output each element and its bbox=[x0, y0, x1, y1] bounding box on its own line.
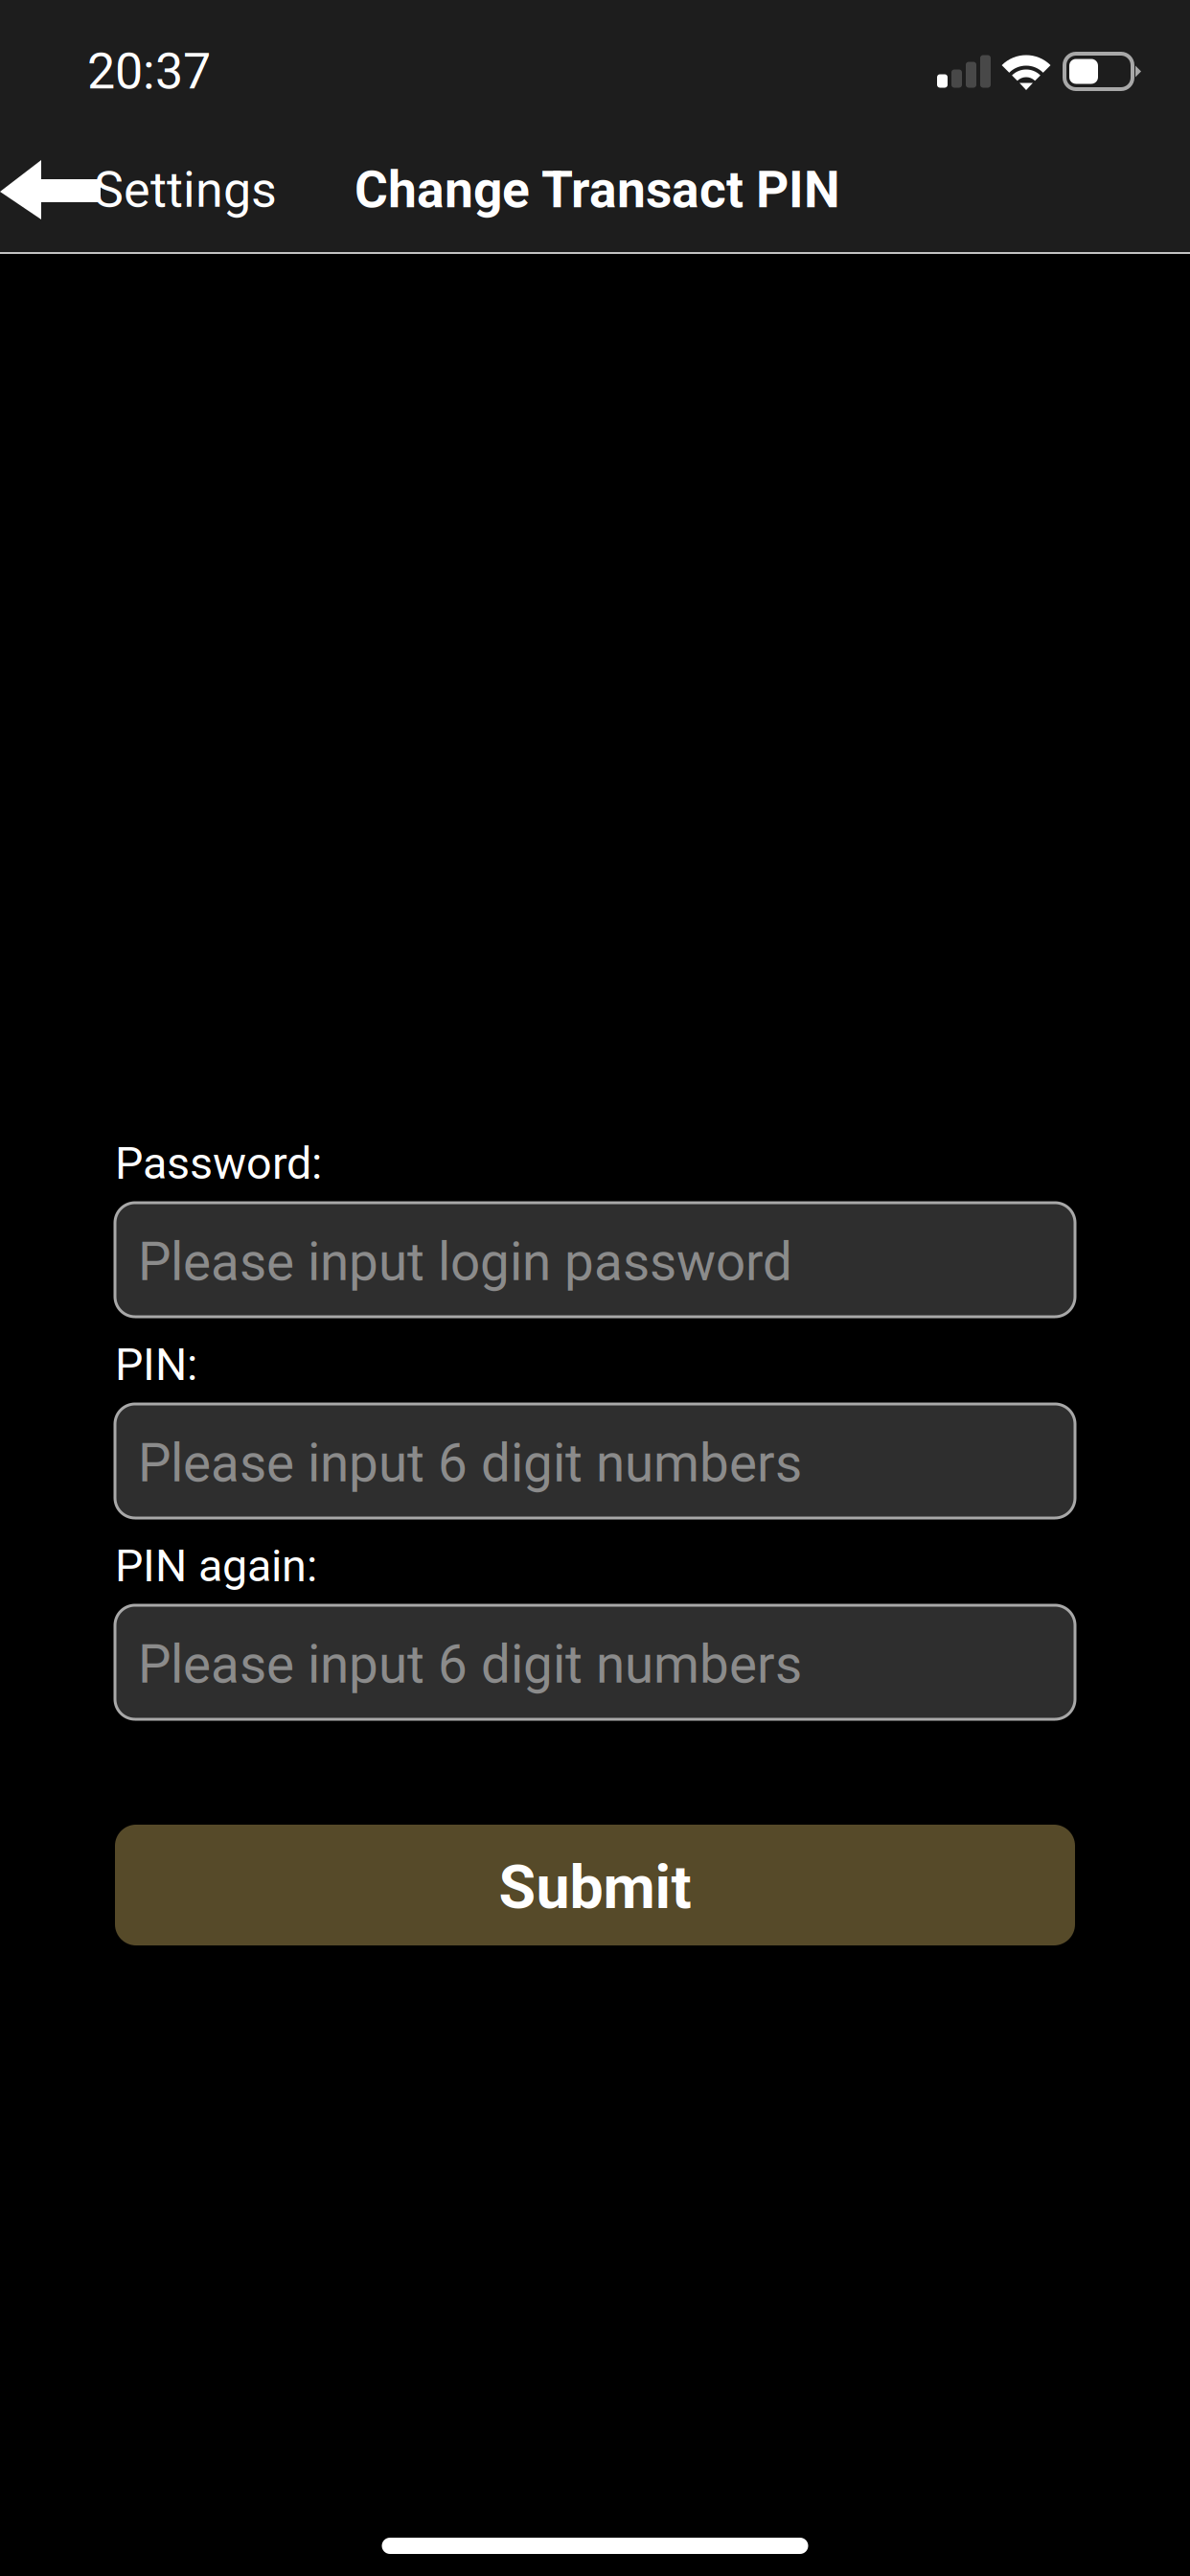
button[interactable]: Please input login password bbox=[115, 1203, 1075, 1317]
button[interactable]: Please input 6 digit numbers bbox=[115, 1605, 1075, 1719]
staticText: Please input 6 digit numbers bbox=[138, 1433, 802, 1494]
staticText: Password: bbox=[115, 1137, 322, 1190]
button[interactable]: Please input 6 digit numbers bbox=[115, 1404, 1075, 1518]
staticText: Settings bbox=[94, 161, 277, 219]
staticText: Please input login password bbox=[138, 1231, 792, 1293]
staticText: PIN again: bbox=[115, 1540, 317, 1592]
staticText: Please input 6 digit numbers bbox=[138, 1634, 802, 1695]
staticText: 20:37 bbox=[87, 42, 211, 101]
button[interactable]: Submit bbox=[115, 1825, 1075, 1945]
staticText: Submit bbox=[499, 1852, 691, 1923]
staticText: Change Transact PIN bbox=[355, 160, 840, 220]
button[interactable]: Back to Settings bbox=[0, 143, 286, 237]
staticText: PIN: bbox=[115, 1339, 197, 1391]
